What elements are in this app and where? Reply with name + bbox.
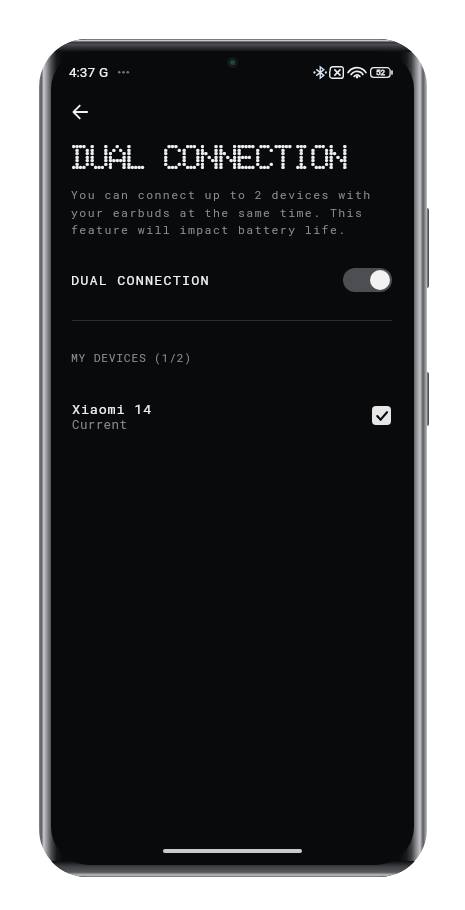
staticText: G bbox=[99, 64, 109, 80]
staticText: DUAL CONNECTION bbox=[72, 137, 348, 178]
staticText: MY DEVICES (1/2) bbox=[71, 350, 192, 365]
staticText: DUAL CONNECTION bbox=[71, 271, 210, 289]
button[interactable]: DUAL CONNECTION bbox=[51, 259, 414, 301]
button[interactable]: Back bbox=[58, 90, 102, 134]
staticText: Xiaomi 14 bbox=[72, 400, 153, 418]
staticText: Current bbox=[72, 416, 128, 432]
staticText: 4:37 bbox=[69, 64, 96, 80]
staticText: You can connect up to 2 devices with you… bbox=[71, 187, 372, 237]
staticText: 52 bbox=[376, 68, 385, 77]
button[interactable]: Xiaomi 14 bbox=[51, 395, 414, 439]
